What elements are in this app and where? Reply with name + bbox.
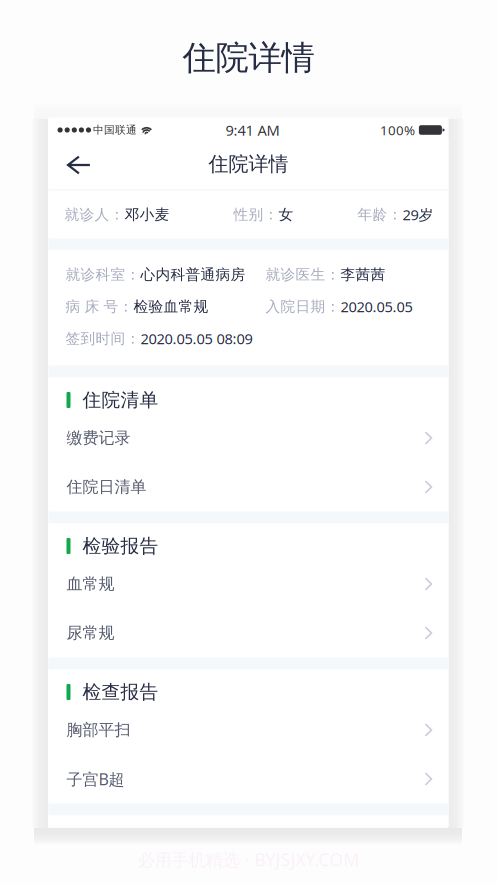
staticText: 中国联通 bbox=[93, 123, 137, 136]
button[interactable]: 住院日清单 bbox=[48, 462, 448, 511]
staticText: 2020.05.05 bbox=[340, 297, 412, 316]
button[interactable]: 尿常规 bbox=[48, 608, 448, 657]
staticText: 住院详情 bbox=[208, 152, 288, 176]
staticText: 住院详情 bbox=[182, 37, 314, 78]
staticText: 胸部平扫 bbox=[66, 720, 130, 740]
button[interactable]: 血常规 bbox=[48, 559, 448, 608]
staticText: 就诊医生： bbox=[265, 265, 340, 283]
staticText: 必用手机精选 · BYJSJXY.COM bbox=[137, 848, 359, 871]
staticText: 2020.05.05 08:09 bbox=[140, 329, 252, 348]
staticText: 住院清单 bbox=[82, 388, 158, 411]
staticText: 检查报告 bbox=[82, 680, 158, 703]
staticText: 年龄： bbox=[357, 205, 402, 223]
staticText: 女 bbox=[278, 205, 293, 223]
staticText: 29岁 bbox=[402, 205, 433, 224]
staticText: 邓小麦 bbox=[124, 205, 169, 223]
staticText: 检验报告 bbox=[82, 534, 158, 557]
button[interactable]: 胸部平扫 bbox=[48, 705, 448, 754]
staticText: 检验血常规 bbox=[133, 297, 208, 315]
staticText: 缴费记录 bbox=[66, 428, 130, 448]
staticText: 李茜茜 bbox=[340, 265, 385, 283]
staticText: 就诊人： bbox=[64, 205, 124, 223]
staticText: 心内科普通病房 bbox=[140, 265, 245, 283]
button[interactable]: 子宫B超 bbox=[48, 754, 448, 803]
staticText: 就诊科室： bbox=[65, 265, 140, 283]
staticText: 9:41 AM bbox=[225, 120, 279, 140]
staticText: 尿常规 bbox=[66, 623, 114, 643]
staticText: 病 床 号： bbox=[65, 297, 133, 315]
button[interactable]: 缴费记录 bbox=[48, 413, 448, 462]
button[interactable]: Back bbox=[48, 141, 103, 189]
staticText: 100% bbox=[380, 121, 415, 139]
staticText: 入院日期： bbox=[265, 297, 340, 315]
staticText: 子宫B超 bbox=[66, 768, 124, 790]
staticText: 签到时间： bbox=[65, 329, 140, 347]
staticText: 住院日清单 bbox=[66, 477, 146, 497]
staticText: 血常规 bbox=[66, 574, 114, 594]
staticText: 性别： bbox=[233, 205, 278, 223]
